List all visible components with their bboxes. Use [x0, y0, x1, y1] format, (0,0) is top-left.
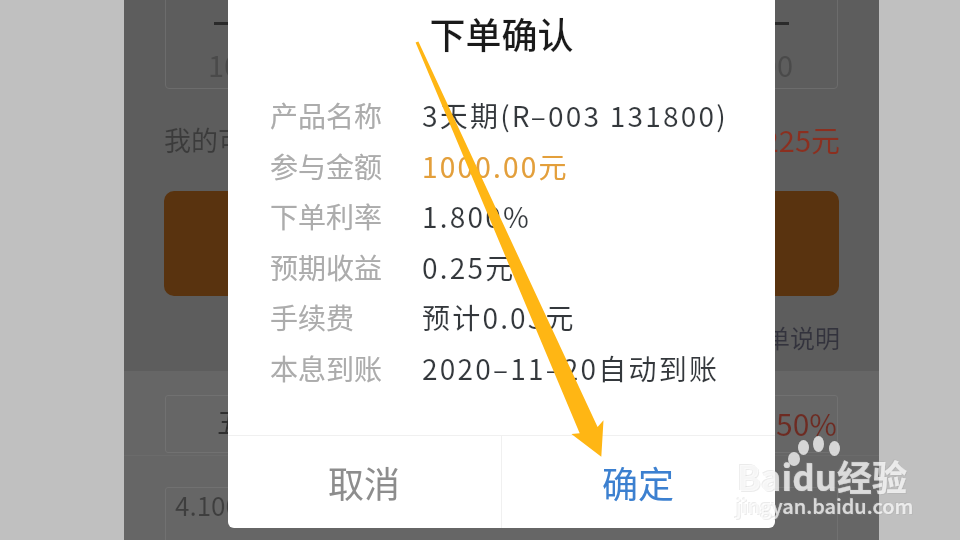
staticText: 1.800% — [422, 196, 531, 237]
staticText: jingyan.baidu.com — [736, 491, 914, 520]
button[interactable] — [165, 395, 838, 453]
staticText: 下单利率 — [270, 196, 383, 237]
staticText: 3天期(R–003 131800) — [422, 95, 728, 136]
staticText: 4.1000 — [175, 486, 255, 524]
button[interactable]: 取消 — [228, 436, 501, 528]
staticText: jingyan.baidu.com — [735, 490, 913, 519]
staticText: 1000.00 — [633, 43, 793, 85]
staticText: 我的可用余额 — [164, 120, 326, 159]
staticText: 预期收益 — [270, 247, 383, 288]
staticText: 五万 — [217, 402, 271, 441]
staticText: Baidu经验 — [737, 450, 907, 501]
button[interactable] — [164, 191, 839, 296]
staticText: 1.350% — [677, 401, 837, 444]
staticText: 取消 — [328, 456, 401, 508]
staticText: 手续费 — [270, 297, 355, 338]
staticText: 查看下单说明 — [669, 319, 840, 355]
staticText: 预计0.03元 — [422, 297, 576, 338]
staticText: jingyan.baidu.com — [737, 492, 915, 521]
staticText: 0.25元 — [422, 247, 516, 288]
staticText: 下单确认 — [228, 7, 775, 59]
staticText: 13225元 — [680, 118, 840, 160]
staticText: 确定 — [602, 456, 675, 508]
staticText: 参与金额 — [270, 146, 383, 187]
staticText: 2020–11–20自动到账 — [422, 348, 720, 389]
staticText: Baidu经验 — [738, 451, 908, 502]
button[interactable]: 确定 — [502, 436, 775, 528]
button[interactable] — [165, 487, 838, 540]
staticText: Baidu经验 — [736, 449, 906, 500]
staticText: 1000.00 — [208, 43, 313, 85]
staticText: 产品名称 — [270, 95, 383, 136]
staticText: 1000.00元 — [422, 146, 569, 187]
staticText: 本息到账 — [270, 348, 383, 389]
